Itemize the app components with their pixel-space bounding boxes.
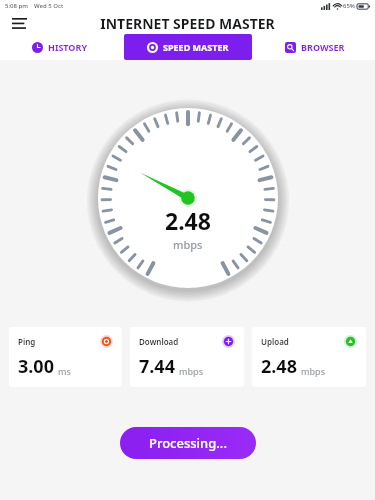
staticText: INTERNET SPEED MASTER [100,14,275,33]
staticText: Download [139,336,179,347]
staticText: Upload [261,336,289,347]
button[interactable]: Menu [7,12,31,34]
staticText: Ping [18,336,36,347]
button[interactable]: Download [130,327,244,387]
staticText: 2.48 [165,205,211,236]
staticText: mbps [179,365,204,377]
staticText: SPEED MASTER [163,41,229,53]
staticText: 5:08 pm [5,2,28,10]
staticText: mbps [301,365,326,377]
staticText: 65% [343,2,355,10]
button[interactable]: BROWSER [279,41,351,53]
staticText: 2.48 [261,354,297,379]
button[interactable]: Upload [252,327,366,387]
button[interactable]: HISTORY [26,41,94,53]
staticText: mbps [173,237,203,252]
staticText: HISTORY [48,41,88,53]
staticText: 7.44 [139,354,175,379]
staticText: ms [58,365,71,377]
button[interactable]: Processing... [120,427,256,459]
button[interactable]: Ping [9,327,122,387]
staticText: BROWSER [301,41,345,53]
button[interactable]: SPEED MASTER [124,34,252,60]
staticText: 3.00 [18,354,54,379]
staticText: Wed 5 Oct [34,2,64,10]
staticText: Processing... [149,434,227,452]
